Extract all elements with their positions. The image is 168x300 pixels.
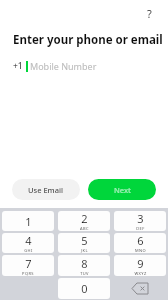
staticText: Mobile Number xyxy=(30,60,97,72)
button[interactable]: 1 xyxy=(2,211,54,231)
staticText: ABC xyxy=(80,226,89,231)
staticText: DEF xyxy=(136,226,145,231)
button[interactable]: 2 xyxy=(58,211,110,231)
staticText: WXYZ xyxy=(134,271,147,276)
button[interactable]: Backspace xyxy=(112,277,168,300)
staticText: TUV xyxy=(80,271,89,276)
staticText: Next xyxy=(114,185,131,195)
staticText: MNO xyxy=(135,248,146,253)
button[interactable]: 9 xyxy=(114,255,166,276)
staticText: 9 xyxy=(137,256,144,271)
button[interactable]: 6 xyxy=(114,233,166,253)
staticText: Enter your phone or email xyxy=(13,32,163,48)
button[interactable]: 7 xyxy=(2,255,54,276)
staticText: PQRS xyxy=(22,271,34,276)
staticText: 0 xyxy=(81,281,88,296)
staticText: JKL xyxy=(81,248,88,253)
button[interactable]: 0 xyxy=(58,278,110,299)
button[interactable]: 8 xyxy=(58,255,110,276)
button[interactable]: 4 xyxy=(2,233,54,253)
button[interactable]: Use Email xyxy=(12,179,80,200)
staticText: 6 xyxy=(137,233,144,248)
button[interactable]: Next xyxy=(88,179,156,200)
button[interactable]: Help xyxy=(140,4,158,22)
staticText: 4 xyxy=(25,233,32,248)
staticText: +1 xyxy=(13,60,23,72)
button[interactable]: +1 xyxy=(13,60,168,72)
button[interactable]: 5 xyxy=(58,233,110,253)
staticText: 5 xyxy=(81,233,88,248)
staticText: 2 xyxy=(81,211,88,226)
staticText: 3 xyxy=(137,211,144,226)
button[interactable]: 3 xyxy=(114,211,166,231)
staticText: 7 xyxy=(25,256,32,271)
staticText: 1 xyxy=(25,214,32,229)
staticText: ? xyxy=(147,6,152,21)
staticText: Use Email xyxy=(28,185,64,195)
staticText: 8 xyxy=(81,256,88,271)
staticText: GHI xyxy=(24,248,33,253)
